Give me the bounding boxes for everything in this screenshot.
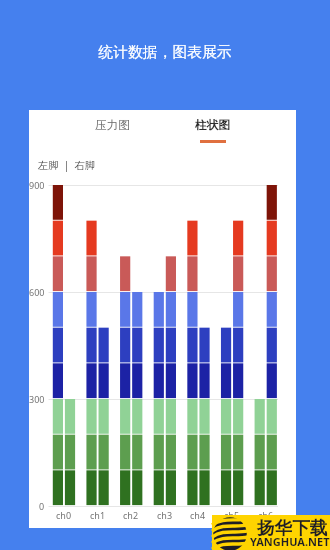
staticText: ch4 xyxy=(190,509,206,521)
staticText: 0 xyxy=(39,500,45,512)
staticText: ch6 xyxy=(258,509,274,521)
staticText: ch3 xyxy=(157,509,173,521)
staticText: 扬华下载 xyxy=(257,517,328,539)
staticText: 300 xyxy=(29,393,45,405)
staticText: ch5 xyxy=(224,509,240,521)
staticText: 左脚 | 右脚 xyxy=(38,158,95,172)
staticText: ch0 xyxy=(56,509,72,521)
staticText: 统计数据，图表展示 xyxy=(0,43,330,62)
staticText: YANGHUA.NET xyxy=(250,534,330,549)
staticText: ch1 xyxy=(90,509,106,521)
staticText: 压力图 xyxy=(95,118,130,133)
staticText: 柱状图 xyxy=(195,118,230,133)
staticText: 600 xyxy=(29,286,45,298)
button[interactable]: 柱状图 xyxy=(162,110,262,143)
staticText: ch2 xyxy=(123,509,139,521)
button[interactable]: 压力图 xyxy=(62,110,162,143)
staticText: 900 xyxy=(29,179,45,191)
